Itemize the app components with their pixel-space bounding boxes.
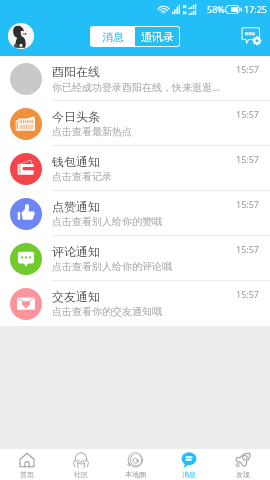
staticText: 你已经成功登录酉阳在线，快来逛逛... bbox=[52, 80, 221, 94]
staticText: 评论通知 bbox=[52, 244, 100, 259]
button[interactable]: 社区 bbox=[54, 449, 108, 480]
button[interactable]: 发现 bbox=[216, 449, 270, 480]
staticText: 钱包通知 bbox=[52, 154, 100, 169]
button[interactable]: New chat bbox=[241, 26, 262, 47]
staticText: 点击查看别人给你的评论哦 bbox=[52, 260, 172, 273]
button[interactable]: 今日头条 bbox=[0, 101, 270, 146]
staticText: 本地圈 bbox=[125, 470, 146, 479]
button[interactable]: 评论通知 bbox=[0, 236, 270, 281]
button[interactable]: 首页 bbox=[0, 449, 54, 480]
staticText: 点击查看最新热点 bbox=[52, 125, 132, 138]
staticText: 15:57 bbox=[236, 108, 260, 120]
staticText: 15:57 bbox=[236, 63, 260, 75]
button[interactable]: Profile bbox=[8, 23, 34, 49]
staticText: 15:57 bbox=[236, 288, 260, 300]
staticText: 15:57 bbox=[236, 198, 260, 210]
staticText: 社区 bbox=[74, 470, 88, 479]
staticText: 发现 bbox=[236, 470, 250, 479]
staticText: 交友通知 bbox=[52, 289, 100, 304]
staticText: 消息 bbox=[102, 30, 124, 44]
staticText: 点击查看记录 bbox=[52, 170, 112, 183]
staticText: 点赞通知 bbox=[52, 199, 100, 214]
button[interactable]: 酉阳在线 bbox=[0, 56, 270, 101]
staticText: 通讯录 bbox=[141, 30, 174, 44]
staticText: 15:57 bbox=[236, 243, 260, 255]
button[interactable]: 消息 bbox=[162, 449, 216, 480]
staticText: 消息 bbox=[182, 470, 196, 479]
staticText: 58% bbox=[207, 3, 225, 15]
button[interactable]: 交友通知 bbox=[0, 281, 270, 326]
staticText: 15:57 bbox=[236, 153, 260, 165]
staticText: 酉阳在线 bbox=[52, 64, 100, 79]
button[interactable]: 通讯录 bbox=[135, 27, 179, 46]
staticText: 点击查看你的交友通知哦 bbox=[52, 305, 162, 318]
staticText: 点击查看别人给你的赞哦 bbox=[52, 215, 162, 228]
staticText: 今日头条 bbox=[52, 109, 100, 124]
button[interactable]: 钱包通知 bbox=[0, 146, 270, 191]
staticText: 17:25 bbox=[244, 3, 268, 15]
staticText: 首页 bbox=[20, 470, 34, 479]
button[interactable]: 消息 bbox=[91, 27, 135, 46]
button[interactable]: 本地圈 bbox=[108, 449, 162, 480]
button[interactable]: 点赞通知 bbox=[0, 191, 270, 236]
